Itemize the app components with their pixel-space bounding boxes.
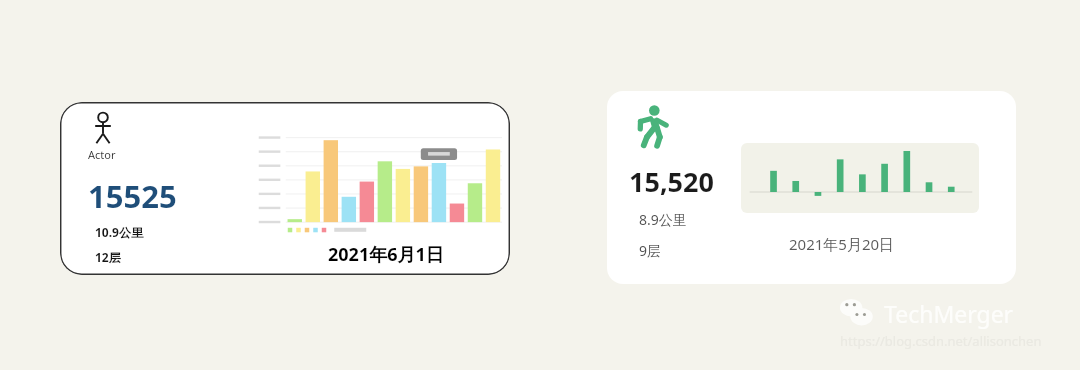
staticText: 15,520 (629, 163, 714, 200)
staticText: 15525 (88, 175, 177, 217)
other: Actor (88, 112, 118, 146)
staticText: Actor (88, 147, 116, 162)
button[interactable]: Steps (607, 91, 1016, 284)
other: Steps (629, 104, 675, 150)
staticText: https://blog.csdn.net/allisonchen (840, 332, 1042, 350)
staticText: TechMerger (884, 298, 1014, 329)
staticText: 12层 (95, 249, 121, 265)
staticText: 2021年5月20日 (789, 234, 895, 254)
staticText: 2021年6月1日 (328, 242, 444, 267)
staticText: 10.9公里 (95, 224, 143, 240)
staticText: 9层 (639, 241, 662, 260)
staticText: 8.9公里 (639, 210, 687, 229)
button[interactable]: Actor (60, 102, 510, 275)
